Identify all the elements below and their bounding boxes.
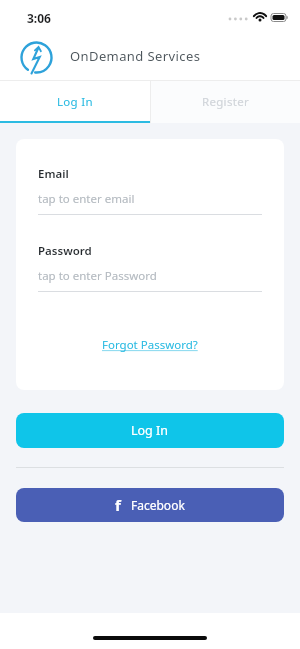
staticText: Forgot Password? (102, 337, 198, 353)
staticText: Log In (131, 422, 169, 439)
staticText: f (115, 495, 121, 515)
staticText: Email (38, 166, 69, 182)
staticText: tap to enter email (38, 191, 135, 207)
staticText: Facebook (131, 497, 185, 513)
staticText: Log In (57, 94, 93, 110)
staticText: Register (202, 94, 249, 110)
staticText: Password (38, 243, 92, 259)
staticText: tap to enter Password (38, 268, 157, 284)
staticText: OnDemand Services (70, 47, 201, 65)
staticText: 3:06 (27, 10, 51, 26)
